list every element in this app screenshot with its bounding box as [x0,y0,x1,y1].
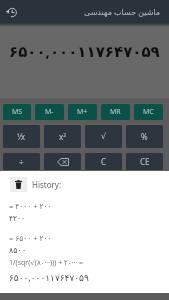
staticText: x² [59,131,67,142]
staticText: ۸۵۰۰ [9,246,27,255]
button[interactable]: History [0,1,22,23]
button[interactable]: M- [35,104,64,120]
staticText: MC [143,107,154,117]
button[interactable]: MC [134,104,163,120]
button[interactable]: Backspace [44,153,81,170]
staticText: √ [101,132,107,141]
staticText: MR [110,107,121,117]
button[interactable]: % [126,125,163,148]
staticText: M+ [77,107,88,117]
button[interactable]: M+ [68,104,97,120]
staticText: ماشین حساب مهندسی [84,6,161,17]
other: Clear history [10,177,27,192]
staticText: ¹⁄x [17,131,26,142]
button[interactable]: = ۴۰۰۰ + ۲۰۰ [0,201,169,223]
staticText: ۴۲۰۰ [9,214,26,223]
button[interactable]: Clear history [10,177,62,192]
staticText: C [101,156,107,167]
staticText: History: [32,179,62,190]
button[interactable]: ¹⁄x [3,125,40,148]
button[interactable]: 1/(sqr(√(۸۰···))) + ۲۰··· = [0,258,169,283]
button[interactable]: CE [126,153,163,170]
button[interactable]: C [85,153,122,170]
staticText: = ۴۰۰۰ + ۲۰۰ [9,201,52,211]
staticText: = ۶۵۰۰ + ۲۰۰ [9,233,52,243]
button[interactable]: MS [3,104,31,120]
staticText: M- [45,107,54,117]
staticText: ۶۵۰۰,۰۰۰۱۱۷۶۴۷۰۵۹ [9,271,89,283]
staticText: % [141,131,148,142]
staticText: MS [12,107,23,117]
button[interactable]: x² [44,125,81,148]
staticText: CE [140,156,150,167]
button[interactable]: = ۶۵۰۰ + ۲۰۰ [0,233,169,255]
button[interactable]: √ [85,125,122,148]
staticText: ۶۵۰۰,۰۰۰۱۱۷۶۴۷۰۵۹ [9,41,160,61]
staticText: 1/(sqr(√(۸۰···))) + ۲۰··· = [9,258,83,268]
staticText: ÷ [19,156,24,167]
button[interactable]: MR [101,104,130,120]
button[interactable]: ÷ [3,153,40,170]
